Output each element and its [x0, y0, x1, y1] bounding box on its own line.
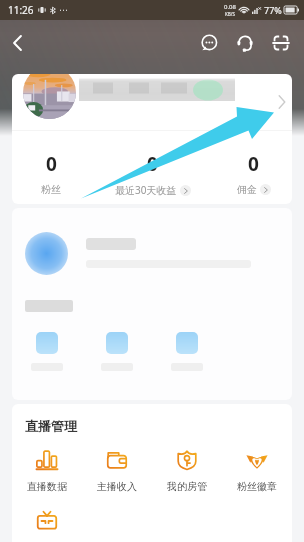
staticText: KB/S [225, 11, 235, 17]
staticText: 主播收入 [97, 480, 137, 493]
button[interactable]: 主播收入 [82, 449, 152, 493]
button[interactable]: Customer service [233, 31, 257, 55]
button[interactable] [152, 332, 222, 371]
staticText: 粉丝 [41, 183, 61, 196]
button[interactable]: 粉丝徽章 [222, 449, 292, 493]
button[interactable]: Scan [269, 31, 293, 55]
button[interactable] [12, 332, 82, 371]
staticText: 77% [264, 4, 282, 16]
staticText: 我的房管 [167, 480, 207, 493]
staticText: 0 [147, 151, 158, 177]
button[interactable]: Messages [197, 31, 221, 55]
button[interactable]: Back [4, 30, 30, 56]
button[interactable] [12, 228, 292, 278]
button[interactable]: 我的房管 [152, 449, 222, 493]
staticText: 最近30天收益 [115, 183, 177, 197]
staticText: 0 [46, 151, 57, 177]
staticText: 直播数据 [27, 480, 67, 493]
button[interactable] [12, 74, 292, 130]
button[interactable]: 上电视记录 [12, 510, 82, 542]
button[interactable]: 直播数据 [12, 449, 82, 493]
staticText: 0.08 [224, 3, 236, 11]
staticText: 0 [248, 151, 259, 177]
staticText: 佣金 [237, 183, 257, 196]
button[interactable]: 0 [102, 131, 203, 204]
staticText: 粉丝徽章 [237, 480, 277, 493]
staticText: 11:26 [8, 3, 34, 17]
staticText: ⋯ [59, 5, 68, 15]
button[interactable]: 0 [203, 131, 292, 204]
button[interactable] [82, 332, 152, 371]
staticText: 直播管理 [25, 418, 77, 434]
button[interactable]: 0 [12, 131, 102, 204]
